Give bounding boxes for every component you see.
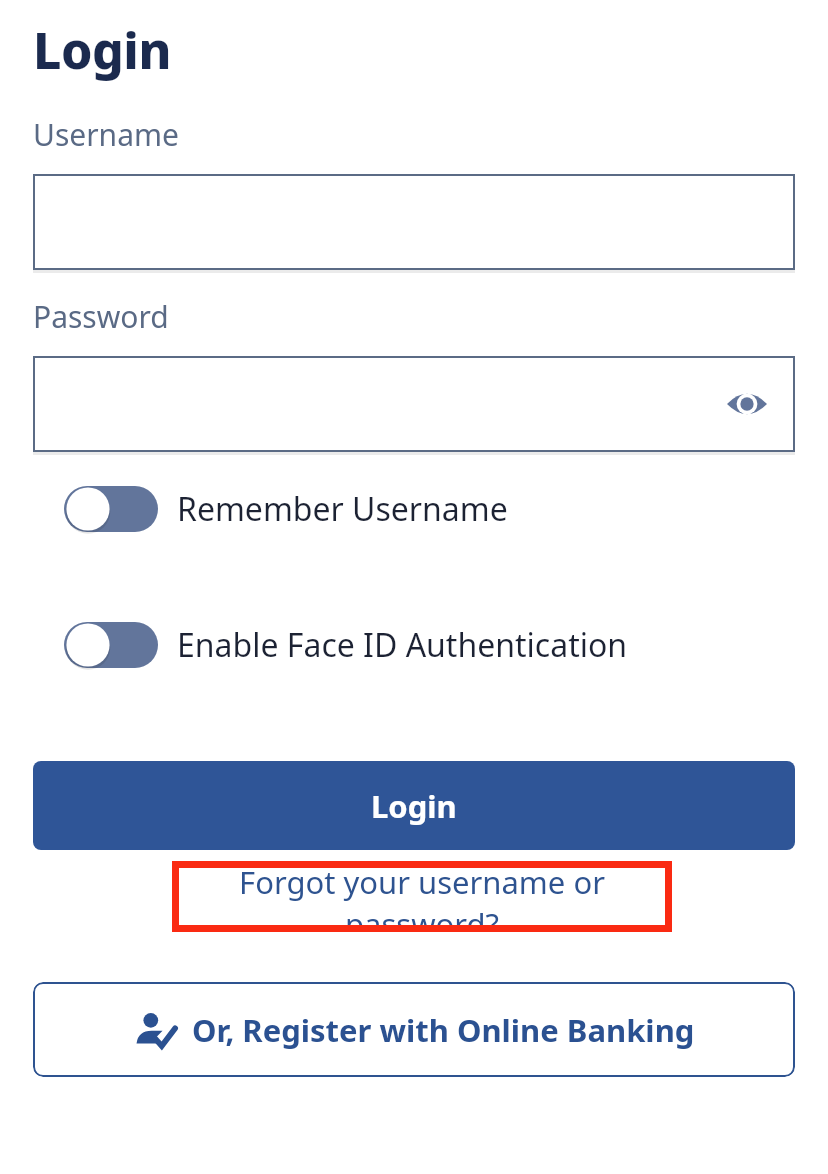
staticText: Login [371, 785, 457, 827]
staticText: Enable Face ID Authentication [177, 623, 628, 667]
button[interactable]: Login [33, 761, 795, 850]
button[interactable]: Or, Register with Online Banking [33, 982, 795, 1077]
button[interactable] [33, 174, 795, 270]
button[interactable]: Forgot your username or password? [172, 861, 672, 932]
button[interactable]: Show password [33, 356, 795, 452]
button[interactable]: Remember Username [33, 481, 795, 537]
staticText: Password [33, 296, 169, 337]
staticText: Or, Register with Online Banking [192, 1009, 695, 1051]
staticText: Remember Username [177, 487, 508, 531]
staticText: Forgot your username or password? [172, 861, 672, 932]
staticText: Login [33, 16, 171, 84]
staticText: Username [33, 114, 179, 155]
button[interactable]: Show password [719, 376, 775, 432]
button[interactable]: Enable Face ID Authentication [33, 617, 795, 673]
